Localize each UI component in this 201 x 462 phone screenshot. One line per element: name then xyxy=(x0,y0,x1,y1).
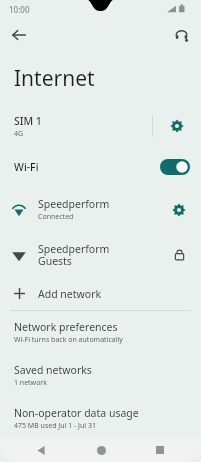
staticText: Speedperform Guests xyxy=(38,242,110,268)
button[interactable]: Network preferences xyxy=(0,311,201,354)
staticText: Non-operator data usage xyxy=(14,406,139,420)
staticText: SIM 1 xyxy=(14,114,42,128)
button[interactable]: Home xyxy=(88,438,114,462)
staticText: 10:00 xyxy=(9,4,30,15)
button[interactable]: Speedperform Guests xyxy=(0,232,201,277)
staticText: Network preferences xyxy=(14,320,118,334)
button[interactable]: Non-operator data usage xyxy=(0,397,201,440)
button[interactable]: Speedperform xyxy=(0,187,201,232)
staticText: Internet xyxy=(14,64,95,93)
button[interactable]: Saved networks xyxy=(0,354,201,397)
staticText: Add network xyxy=(38,287,102,301)
button[interactable]: Secured network xyxy=(157,232,201,277)
button[interactable]: SIM 1 settings xyxy=(153,105,201,147)
staticText: 4G xyxy=(14,129,24,139)
staticText: Connected xyxy=(38,212,74,222)
staticText: 475 MB used Jul 1 - Jul 31 xyxy=(14,421,96,431)
staticText: 1 network xyxy=(14,378,47,388)
staticText: Wi-Fi xyxy=(14,160,160,174)
staticText: Speedperform xyxy=(38,197,110,211)
button[interactable]: Back xyxy=(4,20,34,50)
button[interactable]: Add network xyxy=(0,277,201,310)
button[interactable]: Back xyxy=(28,438,54,462)
button[interactable]: SIM 1 xyxy=(0,105,152,147)
button[interactable]: Wi-Fi xyxy=(0,147,201,187)
button[interactable]: Headset connected xyxy=(166,20,196,50)
button[interactable]: Recent apps xyxy=(147,438,173,462)
staticText: Saved networks xyxy=(14,363,92,377)
staticText: Wi-Fi turns back on automatically xyxy=(14,335,123,345)
button[interactable]: Network settings xyxy=(157,187,201,232)
